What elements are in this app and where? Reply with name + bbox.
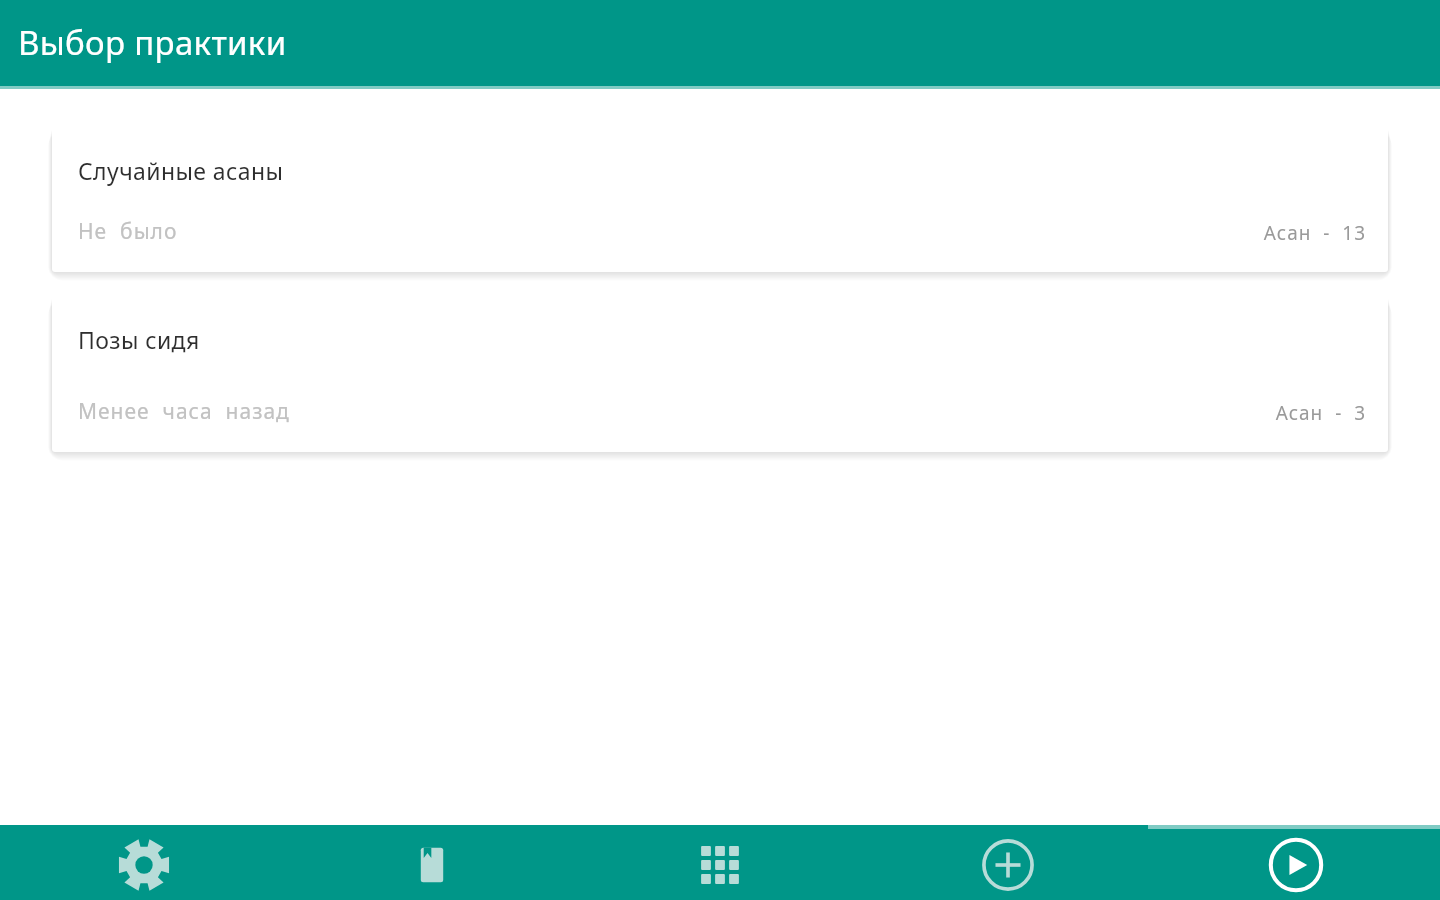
button[interactable]: Позы сидя (52, 295, 1388, 452)
button[interactable]: Settings (0, 829, 288, 900)
button[interactable]: Bookmarks (288, 829, 576, 900)
staticText: Выбор практики (18, 20, 287, 65)
staticText: Асан - 3 (1275, 400, 1366, 426)
staticText: Позы сидя (78, 324, 200, 355)
button[interactable]: Add (864, 829, 1152, 900)
button[interactable]: Play (1152, 829, 1440, 900)
staticText: Менее часа назад (78, 397, 290, 426)
staticText: Асан - 13 (1263, 220, 1366, 246)
staticText: Не было (78, 217, 178, 246)
button[interactable]: Случайные асаны (52, 126, 1388, 272)
staticText: Случайные асаны (78, 155, 284, 186)
button[interactable]: Grid (576, 829, 864, 900)
